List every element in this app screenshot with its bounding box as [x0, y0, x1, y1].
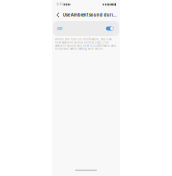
staticText: 9:41	[56, 3, 62, 6]
staticText: Use Ambient sound during…	[63, 12, 118, 18]
staticText: On	[57, 26, 62, 31]
staticText: When you turn on this feature, you can h…	[55, 38, 116, 50]
button[interactable]: Back	[55, 9, 61, 20]
button[interactable]: On	[53, 21, 119, 36]
